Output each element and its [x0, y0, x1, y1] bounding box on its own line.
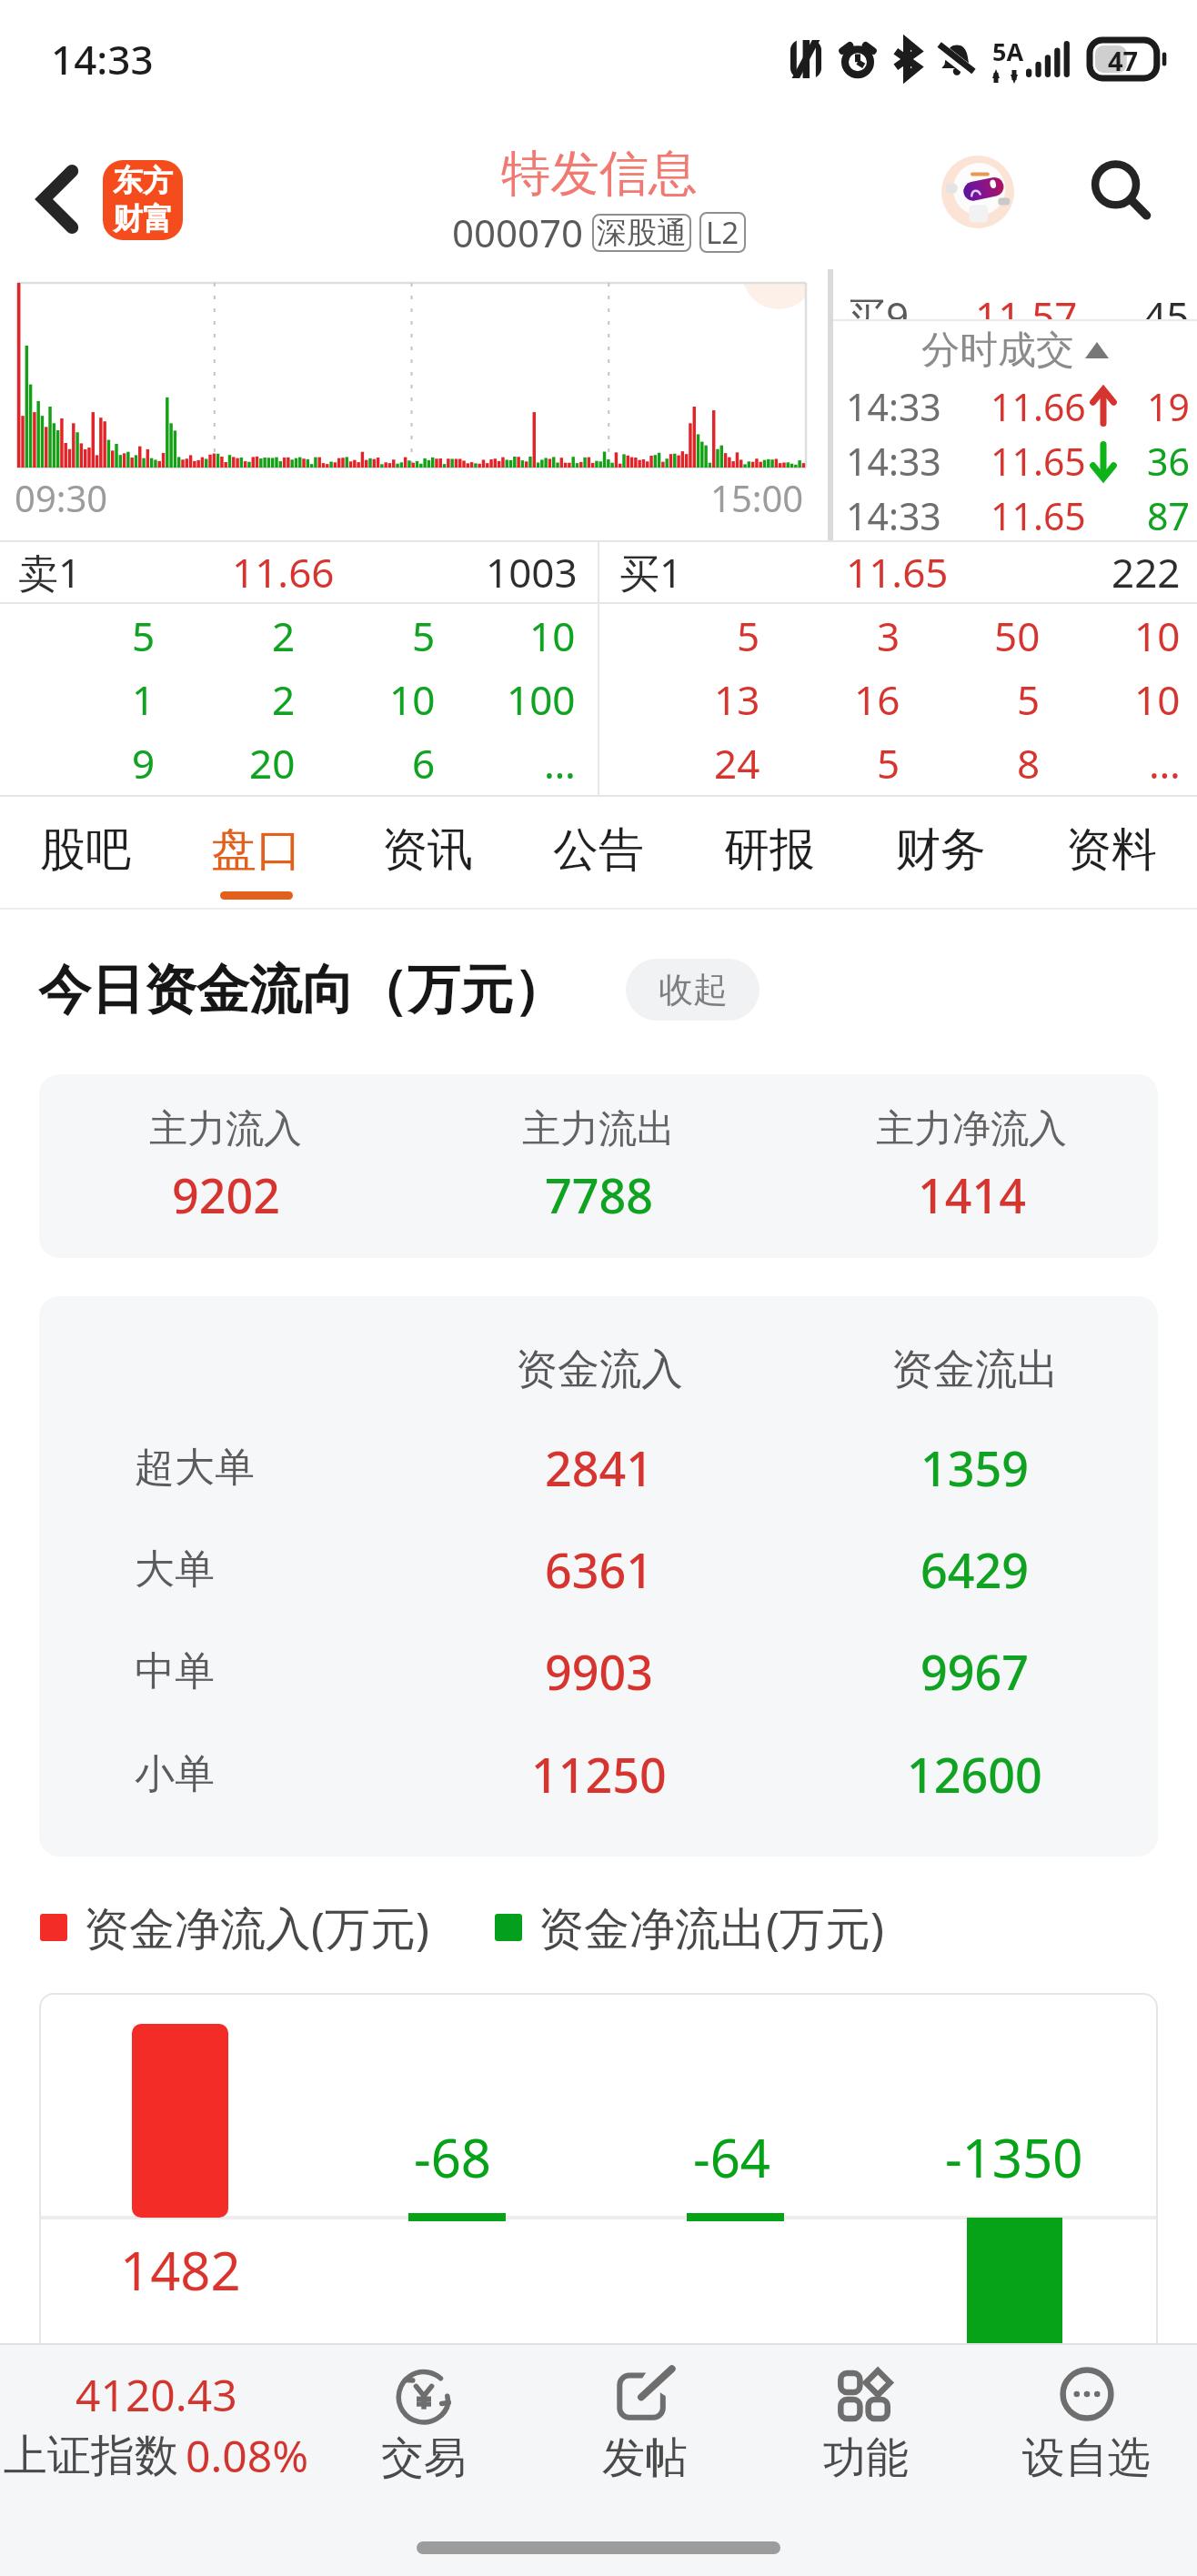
staticText: 小单 [135, 1749, 215, 1799]
staticText: 8 [1017, 736, 1041, 790]
staticText: 3 [877, 609, 900, 663]
staticText: 主力流入 [149, 1105, 302, 1153]
staticText: 资金流出 [891, 1343, 1059, 1396]
staticText: 1 [132, 672, 156, 727]
button[interactable]: 功能 [755, 2345, 976, 2505]
button[interactable]: 卖1 [0, 542, 598, 602]
button[interactable]: 东方 [103, 160, 183, 240]
button[interactable]: 小单 [39, 1723, 1158, 1826]
staticText: 16 [854, 672, 900, 727]
staticText: 4120.43 [75, 2365, 237, 2424]
staticText: 9903 [545, 1639, 653, 1704]
staticText: 5 [132, 609, 156, 663]
staticText: 资金净流入(万元) [84, 1897, 429, 1958]
button[interactable]: 公告 [513, 805, 684, 916]
staticText: 5 [1017, 672, 1041, 727]
staticText: 研报 [724, 821, 815, 879]
button[interactable]: 主力流出 [412, 1074, 785, 1258]
staticText: 大单 [135, 1545, 215, 1595]
staticText: 19 [1147, 381, 1190, 432]
staticText: 发帖 [602, 2431, 688, 2485]
staticText: 分时成交 [921, 327, 1074, 375]
staticText: 财富 [113, 200, 173, 238]
staticText: 设自选 [1022, 2431, 1151, 2485]
staticText: 14:33 [846, 436, 941, 487]
button[interactable]: 14:33 [833, 379, 1197, 434]
staticText: 卖1 [18, 545, 82, 599]
button[interactable]: 买1 [599, 542, 1197, 602]
staticText: 14:33 [846, 381, 941, 432]
staticText: 36 [1147, 436, 1190, 487]
staticText: 东方 [113, 162, 173, 200]
button[interactable]: 大单 [39, 1518, 1158, 1620]
staticText: 2841 [545, 1435, 653, 1500]
button[interactable]: 发帖 [534, 2345, 755, 2505]
staticText: 中单 [135, 1646, 215, 1696]
staticText: 资金净流出(万元) [538, 1897, 884, 1958]
staticText: 深股通 [597, 214, 687, 252]
staticText: 11.66 [991, 381, 1086, 432]
button[interactable]: 4120.43 [0, 2345, 313, 2505]
staticText: -64 [693, 2121, 771, 2193]
staticText: 47 [1108, 43, 1139, 78]
staticText: 87 [1147, 490, 1190, 541]
button[interactable]: 收起 [626, 959, 759, 1021]
button[interactable]: 设自选 [976, 2345, 1197, 2505]
button[interactable]: 研报 [684, 805, 855, 916]
staticText: 资讯 [382, 821, 473, 879]
staticText: 11.65 [991, 436, 1086, 487]
button[interactable]: 交易 [313, 2345, 534, 2505]
staticText: 盘口 [211, 821, 302, 879]
staticText: 5 [737, 609, 760, 663]
staticText: 公告 [553, 821, 644, 879]
staticText: 买9 [846, 288, 910, 319]
staticText: 11.66 [232, 545, 335, 599]
staticText: 222 [1111, 545, 1181, 599]
button[interactable]: 主力流入 [39, 1074, 412, 1258]
staticText: 2 [272, 672, 296, 727]
staticText: 1414 [918, 1162, 1026, 1227]
button[interactable]: 财务 [855, 805, 1026, 916]
button[interactable]: 盘口 [171, 805, 342, 916]
staticText: -1350 [945, 2121, 1083, 2193]
staticText: 收起 [659, 968, 728, 1011]
staticText: 资金流入 [516, 1343, 683, 1396]
staticText: L2 [706, 212, 739, 253]
button[interactable]: Back [18, 159, 98, 239]
staticText: 6 [412, 736, 436, 790]
button[interactable]: 资讯 [342, 805, 513, 916]
staticText: 45 [1143, 288, 1190, 319]
button[interactable]: 分时成交 [833, 321, 1197, 379]
staticText: 资料 [1066, 821, 1157, 879]
staticText: 10 [529, 609, 576, 663]
staticText: 14:33 [51, 32, 154, 86]
staticText: 100 [507, 672, 576, 727]
staticText: 7788 [545, 1162, 653, 1227]
staticText: 12600 [907, 1742, 1042, 1806]
staticText: 11.57 [975, 288, 1078, 319]
button[interactable]: Search [1077, 148, 1164, 236]
staticText: 9202 [172, 1162, 280, 1227]
staticText: 6429 [920, 1537, 1029, 1602]
staticText: … [1149, 736, 1181, 790]
staticText: 1003 [486, 545, 578, 599]
staticText: 1359 [920, 1435, 1029, 1500]
button[interactable]: 主力净流入 [785, 1074, 1158, 1258]
button[interactable]: 资料 [1026, 805, 1197, 916]
button[interactable]: 股吧 [0, 805, 171, 916]
staticText: 1482 [120, 2234, 241, 2306]
staticText: 10 [389, 672, 436, 727]
button[interactable]: 14:33 [833, 434, 1197, 488]
button[interactable]: 中单 [39, 1620, 1158, 1723]
button[interactable]: 14:33 [833, 488, 1197, 542]
staticText: 13 [714, 672, 760, 727]
staticText: 买1 [619, 545, 683, 599]
staticText: 10 [1134, 672, 1181, 727]
staticText: 9967 [920, 1639, 1029, 1704]
staticText: 11250 [531, 1742, 667, 1806]
button[interactable]: 超大单 [39, 1416, 1158, 1518]
staticText: 上证指数 [4, 2429, 178, 2483]
staticText: 主力净流入 [876, 1105, 1067, 1153]
staticText: 11.65 [846, 545, 949, 599]
button[interactable]: AI assistant [941, 156, 1014, 228]
